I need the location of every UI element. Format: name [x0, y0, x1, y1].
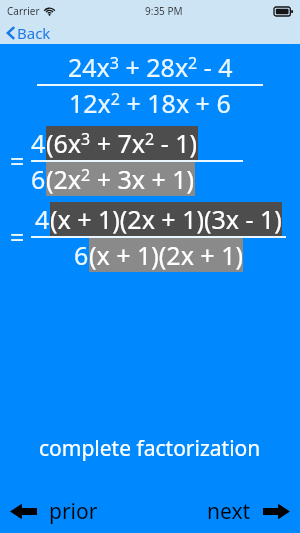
staticText: (6x3 + 7x2 - 1) — [46, 126, 198, 160]
other: Next step — [263, 503, 290, 520]
staticText: prior — [49, 497, 98, 526]
staticText: 4 — [35, 202, 50, 236]
staticText: Back — [17, 23, 51, 43]
staticText: 9:35 PM — [145, 4, 183, 18]
staticText: = — [10, 144, 25, 178]
staticText: = — [10, 220, 25, 254]
button[interactable]: Back — [0, 22, 63, 44]
other: Previous step — [10, 503, 37, 520]
staticText: 4 — [31, 126, 46, 160]
staticText: 12x2 + 18x + 6 — [69, 86, 231, 120]
staticText: next — [207, 497, 251, 526]
staticText: 6 — [74, 238, 89, 272]
staticText: (2x2 + 3x + 1) — [46, 162, 195, 196]
staticText: complete factorization — [39, 434, 261, 463]
staticText: (x + 1)(2x + 1)(3x - 1) — [50, 202, 282, 236]
button[interactable]: next — [203, 491, 294, 532]
staticText: (x + 1)(2x + 1) — [89, 238, 243, 272]
staticText: 24x3 + 28x2 - 4 — [68, 50, 233, 84]
staticText: 6 — [31, 162, 46, 196]
button[interactable]: Previous step — [6, 491, 102, 532]
staticText: Carrier — [7, 4, 40, 18]
